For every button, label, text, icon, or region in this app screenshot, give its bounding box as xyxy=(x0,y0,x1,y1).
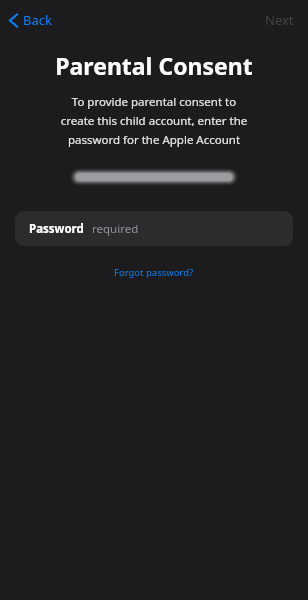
button[interactable]: Next xyxy=(251,6,308,34)
staticText: Back xyxy=(23,11,52,29)
button[interactable]: Forgot password? xyxy=(104,263,204,282)
staticText: required xyxy=(92,221,139,237)
staticText: Password xyxy=(29,221,84,237)
staticText: Next xyxy=(265,11,294,29)
staticText: To provide parental consent to create th… xyxy=(20,94,288,147)
button[interactable]: Password xyxy=(15,211,293,246)
staticText: Parental Consent xyxy=(0,50,308,81)
staticText: Forgot password? xyxy=(114,266,194,279)
button[interactable]: Back xyxy=(0,7,62,33)
